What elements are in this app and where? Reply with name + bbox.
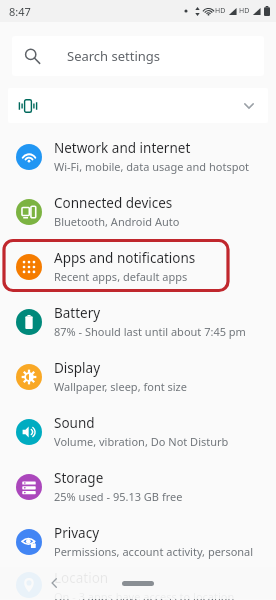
staticText: Wallpaper, sleep, font size — [54, 379, 187, 394]
button[interactable]: Back — [40, 569, 68, 597]
staticText: On - 3 apps have access to location — [54, 589, 235, 600]
button[interactable]: Display — [0, 349, 276, 404]
staticText: Privacy — [54, 524, 100, 542]
staticText: Display — [54, 359, 101, 377]
button[interactable]: Battery — [0, 294, 276, 349]
button[interactable]: Connected devices — [0, 184, 276, 239]
staticText: Connected devices — [54, 194, 173, 212]
staticText: Recent apps, default apps — [54, 269, 188, 284]
button[interactable]: Expand — [238, 95, 260, 117]
button[interactable]: Search settings — [12, 36, 264, 76]
button[interactable]: Storage — [0, 459, 276, 514]
staticText: Apps and notifications — [54, 249, 196, 267]
staticText: HD — [215, 6, 226, 16]
staticText: Bluetooth, Android Auto — [54, 214, 180, 229]
staticText: Sound — [54, 414, 95, 432]
staticText: 87% - Should last until about 7:45 pm — [54, 324, 246, 339]
button[interactable]: Location — [0, 569, 276, 600]
button[interactable]: Privacy — [0, 514, 276, 569]
button[interactable]: Network and internet — [0, 129, 276, 184]
staticText: Permissions, account activity, personal … — [54, 544, 266, 559]
button[interactable]: Home — [122, 581, 154, 586]
staticText: Wi-Fi, mobile, data usage and hotspot — [54, 159, 250, 174]
staticText: 25% used - 95.13 GB free — [54, 489, 183, 504]
staticText: HD — [239, 6, 250, 16]
staticText: 8:47 — [9, 4, 31, 19]
button[interactable]: Apps and notifications — [0, 239, 276, 294]
staticText: Storage — [54, 469, 104, 487]
staticText: Search settings — [67, 47, 161, 65]
button[interactable]: Expand — [8, 88, 268, 123]
button[interactable]: Sound — [0, 404, 276, 459]
staticText: Volume, vibration, Do Not Disturb — [54, 434, 229, 449]
staticText: Battery — [54, 304, 101, 322]
staticText: Network and internet — [54, 139, 191, 157]
staticText: Location — [54, 569, 109, 587]
